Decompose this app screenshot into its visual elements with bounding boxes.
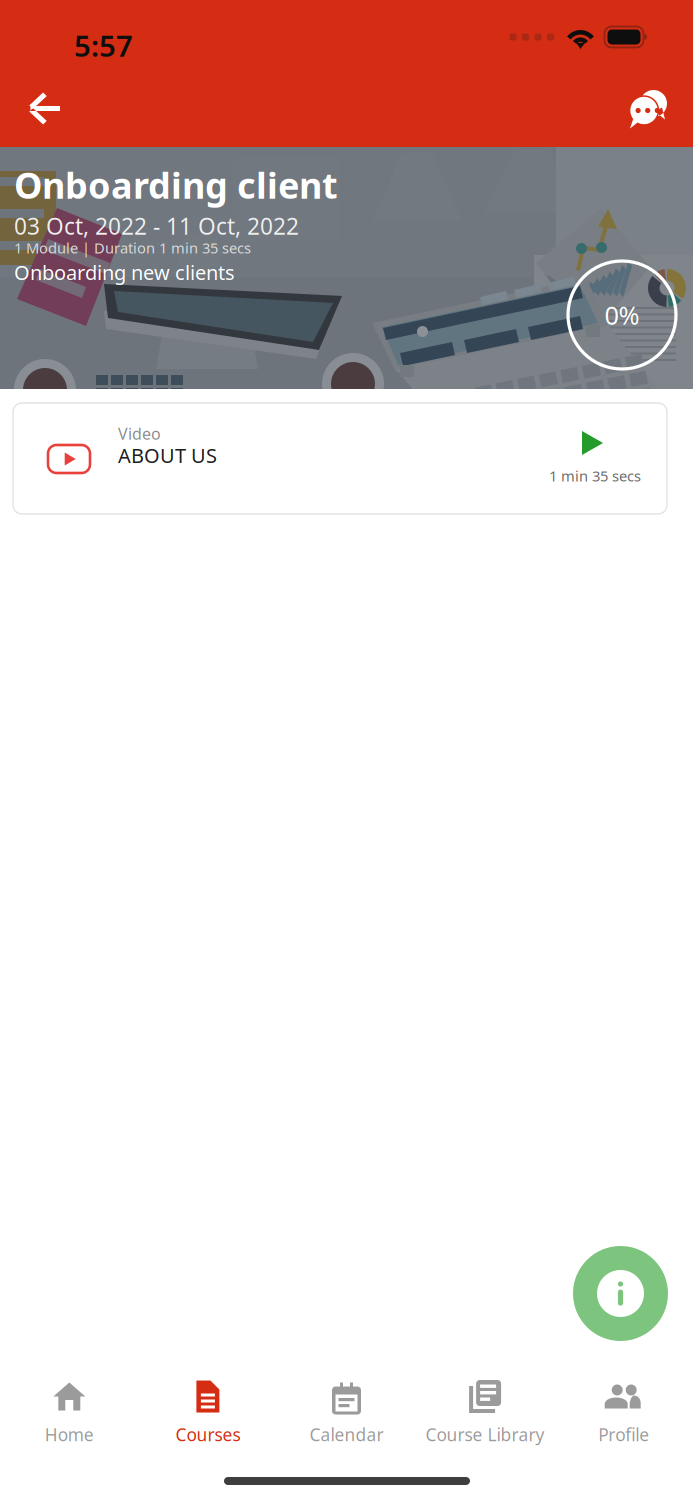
staticText: Course Library bbox=[426, 1423, 545, 1446]
button[interactable]: Courses bbox=[139, 1361, 277, 1459]
staticText: Video bbox=[118, 423, 161, 444]
staticText: Calendar bbox=[309, 1423, 383, 1446]
button[interactable]: Course Library bbox=[416, 1361, 554, 1459]
staticText: Courses bbox=[175, 1423, 240, 1446]
staticText: 03 Oct, 2022 - 11 Oct, 2022 bbox=[14, 211, 299, 241]
button[interactable]: Back bbox=[14, 78, 76, 138]
button[interactable]: Information bbox=[573, 1246, 668, 1341]
staticText: Onboarding new clients bbox=[14, 259, 235, 286]
staticText: ABOUT US bbox=[118, 442, 217, 469]
button[interactable]: Video bbox=[13, 403, 667, 514]
staticText: Onboarding client bbox=[14, 161, 338, 209]
staticText: 1 min 35 secs bbox=[549, 466, 641, 485]
button[interactable]: Messages bbox=[617, 78, 679, 138]
staticText: Home bbox=[45, 1423, 94, 1446]
button[interactable]: Home bbox=[0, 1361, 139, 1459]
staticText: 0% bbox=[604, 298, 639, 332]
staticText: 1 Module | Duration 1 min 35 secs bbox=[14, 238, 251, 257]
staticText: 5:57 bbox=[74, 26, 133, 65]
button[interactable]: Profile bbox=[554, 1361, 693, 1459]
staticText: Profile bbox=[598, 1423, 649, 1446]
button[interactable]: Calendar bbox=[277, 1361, 416, 1459]
